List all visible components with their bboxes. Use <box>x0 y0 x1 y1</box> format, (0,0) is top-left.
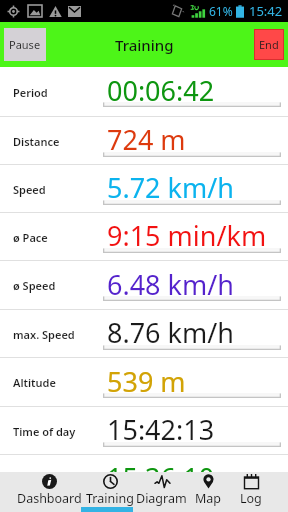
button[interactable]: End <box>254 29 284 60</box>
button[interactable]: 15:36:10 <box>0 455 288 503</box>
staticText: Pause <box>9 37 41 52</box>
staticText: Diagrams <box>136 490 188 512</box>
button[interactable]: max. Speed <box>0 310 288 358</box>
staticText: 15:36:10 <box>107 459 215 496</box>
button[interactable]: Altitude <box>0 358 288 407</box>
staticText: 15:42:13 <box>107 411 215 448</box>
staticText: Speed <box>13 182 46 197</box>
staticText: Log <box>240 490 262 507</box>
staticText: ø Pace <box>13 230 48 245</box>
button[interactable]: Time of day <box>0 407 288 455</box>
button[interactable]: Period <box>0 67 288 117</box>
button[interactable]: Log <box>229 472 273 512</box>
staticText: Training <box>115 35 174 55</box>
staticText: Training <box>86 490 134 507</box>
button[interactable]: Pause <box>4 28 46 61</box>
staticText: 5.72 km/h <box>107 169 234 206</box>
button[interactable]: Training <box>84 472 136 512</box>
staticText: 724 m <box>107 121 186 158</box>
staticText: Distance <box>13 134 60 149</box>
staticText: Altitude <box>13 375 56 390</box>
staticText: Dashboard <box>17 490 82 507</box>
staticText: max. Speed <box>13 327 75 342</box>
staticText: 00:06:42 <box>107 72 215 109</box>
button[interactable]: Map <box>188 472 229 512</box>
button[interactable]: Speed <box>0 165 288 213</box>
button[interactable]: Dashboard <box>14 472 84 512</box>
staticText: 6.48 km/h <box>107 266 234 303</box>
button[interactable]: Diagrams <box>136 472 188 512</box>
button[interactable]: ø Pace <box>0 213 288 261</box>
staticText: 9:15 min/km <box>107 217 267 254</box>
staticText: 539 m <box>107 363 186 400</box>
button[interactable]: Distance <box>0 117 288 165</box>
staticText: Time of day <box>13 424 76 439</box>
staticText: End <box>259 37 279 52</box>
button[interactable]: ø Speed <box>0 261 288 310</box>
staticText: 8.76 km/h <box>107 314 234 351</box>
staticText: 61% <box>209 3 233 19</box>
staticText: ø Speed <box>13 278 56 293</box>
staticText: Period <box>13 85 48 100</box>
staticText: Map <box>195 490 222 507</box>
staticText: 15:42 <box>249 2 283 20</box>
